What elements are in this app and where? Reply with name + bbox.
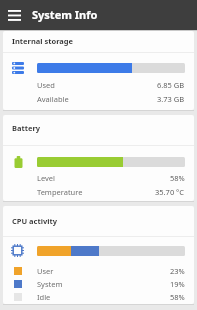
staticText: 58% [170,292,185,302]
staticText: 23% [170,266,185,276]
staticText: 3.73 GB [157,94,185,104]
staticText: Level [37,173,55,183]
staticText: 35.70 °C [155,187,185,197]
button[interactable]: Internal storage [3,31,194,110]
staticText: 58% [170,173,185,183]
staticText: Temperature [37,187,83,197]
staticText: 6.85 GB [157,80,185,90]
button[interactable]: Battery [3,115,194,201]
staticText: Idle [37,292,51,302]
staticText: System Info [32,7,98,22]
staticText: Internal storage [12,36,74,46]
staticText: CPU activity [12,216,58,226]
button[interactable] [6,7,23,24]
staticText: 19% [170,279,185,289]
staticText: User [37,266,54,276]
staticText: Battery [12,123,41,133]
staticText: System [37,279,63,289]
button[interactable]: CPU activity [3,206,194,304]
staticText: Available [37,94,69,104]
staticText: Used [37,80,55,90]
